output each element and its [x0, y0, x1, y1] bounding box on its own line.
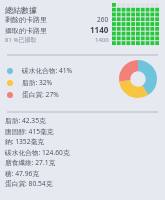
- staticText: 蛋白質: 80.54克: [5, 179, 53, 188]
- staticText: 1140: [90, 24, 109, 35]
- staticText: 脂肪: 32%: [22, 78, 53, 87]
- staticText: 鈉: 1352毫克: [5, 137, 44, 146]
- staticText: 碳水化合物: 41%: [22, 66, 73, 75]
- staticText: 攝取的卡路里: [5, 26, 47, 35]
- staticText: 膳食纖維: 27.1克: [5, 158, 56, 167]
- staticText: 蛋白質: 27%: [22, 90, 59, 99]
- staticText: 1400: [95, 36, 109, 44]
- staticText: 260: [97, 15, 109, 24]
- staticText: 膽固醇: 415毫克: [5, 127, 54, 136]
- staticText: 81 %已攝取: [5, 36, 37, 44]
- staticText: 剩餘的卡路里: [5, 15, 47, 24]
- staticText: 碳水化合物: 124.60克: [5, 148, 70, 157]
- staticText: 總結數據: [5, 5, 37, 15]
- staticText: 脂肪: 42.35克: [5, 116, 46, 125]
- staticText: 糖: 47.96克: [5, 169, 39, 178]
